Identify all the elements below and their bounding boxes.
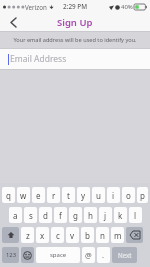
- staticText: Email Address: [10, 53, 67, 65]
- button[interactable]: c: [51, 227, 64, 243]
- staticText: t: [67, 190, 70, 201]
- button[interactable]: Next: [112, 247, 137, 263]
- staticText: u: [96, 190, 101, 201]
- button[interactable]: r: [47, 187, 60, 203]
- staticText: c: [56, 230, 60, 241]
- staticText: l: [134, 210, 137, 221]
- staticText: d: [43, 210, 48, 221]
- staticText: g: [73, 210, 78, 221]
- button[interactable]: s: [24, 207, 37, 223]
- button[interactable]: j: [99, 207, 112, 223]
- button[interactable]: k: [114, 207, 127, 223]
- other: Shift: [2, 227, 19, 243]
- staticText: w: [20, 190, 27, 201]
- button[interactable]: y: [77, 187, 90, 203]
- staticText: a: [13, 210, 18, 221]
- button[interactable]: l: [129, 207, 142, 223]
- staticText: f: [59, 210, 62, 221]
- staticText: v: [70, 230, 75, 241]
- button[interactable]: u: [92, 187, 105, 203]
- button[interactable]: x: [36, 227, 49, 243]
- staticText: s: [29, 210, 33, 221]
- button[interactable]: i: [107, 187, 120, 203]
- button[interactable]: q: [2, 187, 15, 203]
- button[interactable]: t: [62, 187, 75, 203]
- button[interactable]: b: [81, 227, 94, 243]
- button[interactable]: f: [54, 207, 67, 223]
- staticText: o: [126, 190, 131, 201]
- staticText: i: [112, 190, 115, 201]
- button[interactable]: m: [111, 227, 124, 243]
- staticText: Your email address will be used to ident…: [13, 36, 137, 44]
- staticText: .: [102, 250, 105, 260]
- staticText: y: [81, 190, 86, 201]
- button[interactable]: h: [84, 207, 97, 223]
- staticText: n: [100, 230, 105, 241]
- button[interactable]: 123: [2, 247, 19, 263]
- button[interactable]: space: [36, 247, 80, 263]
- staticText: j: [104, 210, 107, 221]
- staticText: e: [36, 190, 41, 201]
- button[interactable]: a: [9, 207, 22, 223]
- button[interactable]: e: [32, 187, 45, 203]
- other: Backspace: [126, 227, 143, 243]
- staticText: z: [26, 230, 30, 241]
- staticText: b: [85, 230, 90, 241]
- staticText: k: [118, 210, 123, 221]
- staticText: Next: [118, 251, 132, 259]
- staticText: q: [6, 190, 11, 201]
- staticText: @: [85, 250, 92, 260]
- staticText: Sign Up: [57, 16, 93, 29]
- button[interactable]: Email Address: [0, 49, 150, 69]
- staticText: r: [52, 190, 56, 201]
- staticText: space: [50, 251, 67, 259]
- staticText: 40%: [121, 3, 133, 11]
- button[interactable]: z: [21, 227, 34, 243]
- button[interactable]: key: [21, 247, 34, 263]
- staticText: x: [40, 230, 45, 241]
- button[interactable]: v: [66, 227, 79, 243]
- button[interactable]: key: [126, 227, 143, 243]
- button[interactable]: key: [2, 227, 19, 243]
- button[interactable]: w: [17, 187, 30, 203]
- staticText: h: [88, 210, 93, 221]
- button[interactable]: n: [96, 227, 109, 243]
- staticText: p: [140, 190, 145, 201]
- button[interactable]: o: [122, 187, 135, 203]
- staticText: 2:29 PM: [63, 2, 88, 11]
- other: Emoji: [21, 247, 34, 263]
- staticText: Verizon: [25, 3, 47, 11]
- button[interactable]: Back: [0, 13, 26, 32]
- staticText: 123: [6, 251, 16, 259]
- button[interactable]: p: [137, 187, 148, 203]
- button[interactable]: g: [69, 207, 82, 223]
- button[interactable]: @: [82, 247, 95, 263]
- button[interactable]: d: [39, 207, 52, 223]
- button[interactable]: .: [97, 247, 110, 263]
- staticText: m: [114, 230, 122, 241]
